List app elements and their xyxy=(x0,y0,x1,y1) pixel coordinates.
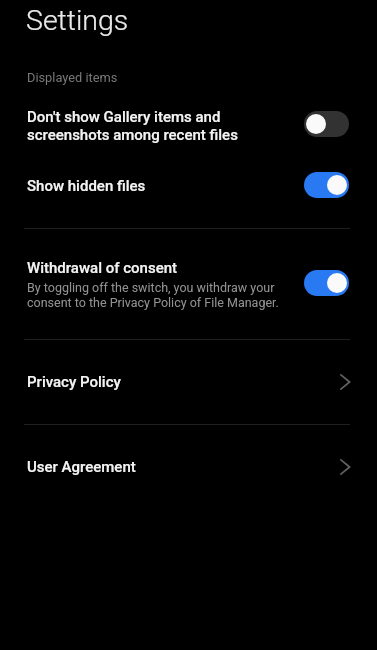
staticText: User Agreement xyxy=(27,458,136,476)
button[interactable]: Withdrawal of consent xyxy=(304,270,349,296)
staticText: Privacy Policy xyxy=(27,373,121,391)
button[interactable]: Don't show Gallery items among recent fi… xyxy=(304,111,349,137)
staticText: Don't show Gallery items and screenshots… xyxy=(27,108,238,144)
staticText: Withdrawal of consent xyxy=(27,259,178,277)
staticText: By toggling off the switch, you withdraw… xyxy=(27,280,279,310)
staticText: Settings xyxy=(26,4,129,37)
staticText: Displayed items xyxy=(27,70,118,85)
button[interactable]: Withdrawal of consent xyxy=(0,248,377,320)
staticText: Show hidden files xyxy=(27,177,146,195)
button[interactable]: User Agreement xyxy=(0,445,377,489)
button[interactable]: Privacy Policy xyxy=(0,360,377,404)
button[interactable]: Show hidden files xyxy=(0,165,377,205)
button[interactable]: Settings xyxy=(0,0,377,56)
button[interactable]: Don't show Gallery items and screenshots… xyxy=(0,96,377,152)
button[interactable]: Show hidden files xyxy=(304,172,349,198)
